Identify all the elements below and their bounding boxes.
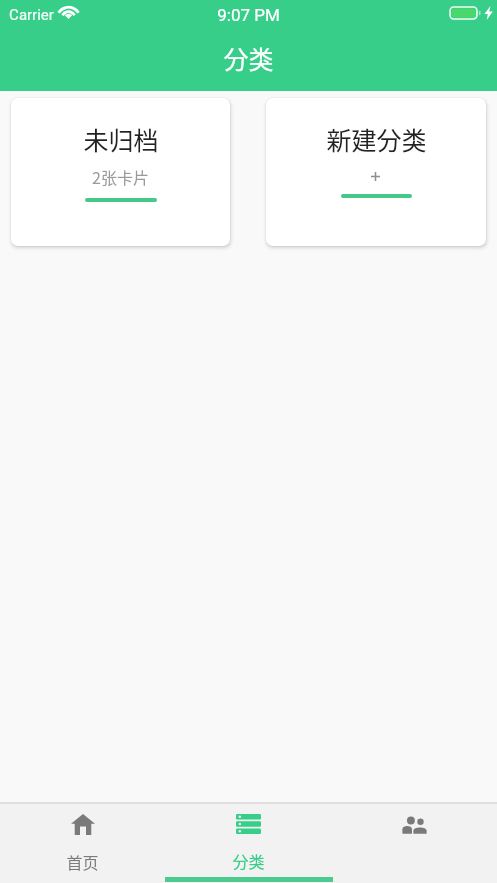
other: 分类 [236, 814, 261, 834]
button[interactable]: 我的 [331, 804, 497, 883]
staticText: Carrier [9, 6, 54, 24]
other: 首页 [71, 814, 95, 835]
staticText: 未归档 [83, 121, 159, 157]
staticText: 分类 [232, 849, 265, 872]
staticText: 2张卡片 [92, 165, 149, 188]
staticText: 首页 [66, 850, 99, 873]
staticText: 新建分类 [326, 121, 427, 157]
other: 我的 [402, 816, 427, 835]
button[interactable]: 首页 [0, 804, 165, 883]
staticText: 9:07 PM [217, 5, 280, 25]
staticText: 分类 [223, 40, 274, 76]
button[interactable]: 新建分类 [266, 98, 486, 246]
button[interactable]: 分类 [165, 804, 331, 883]
button[interactable]: 未归档 [11, 98, 230, 246]
